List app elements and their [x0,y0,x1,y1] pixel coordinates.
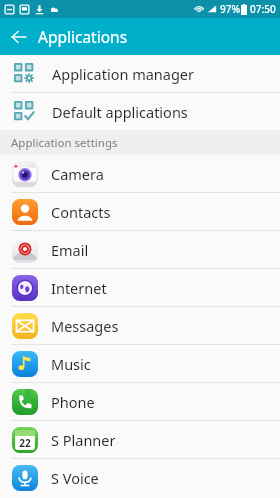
staticText: Application settings [11,135,118,151]
staticText: Contacts [51,202,111,222]
button[interactable]: S Voice [0,459,280,496]
staticText: 97% [220,2,240,16]
staticText: Internet [51,278,107,298]
button[interactable]: Default applications [0,93,280,130]
button[interactable]: Navigate up [5,23,33,51]
staticText: 07:50 [250,2,276,16]
staticText: S Voice [51,468,99,488]
staticText: S Planner [51,430,116,450]
staticText: Camera [51,164,104,184]
staticText: Email [51,240,89,260]
staticText: Application manager [52,64,195,84]
button[interactable]: Contacts [0,193,280,230]
button[interactable]: Phone [0,383,280,420]
staticText: Default applications [52,102,188,122]
button[interactable]: Music [0,345,280,382]
button[interactable]: 22 [0,421,280,458]
staticText: 22 [19,436,31,450]
staticText: Messages [51,316,119,336]
button[interactable]: Internet [0,269,280,306]
staticText: Music [51,354,91,374]
button[interactable]: Camera [0,155,280,192]
button[interactable]: Email [0,231,280,268]
button[interactable]: Messages [0,307,280,344]
button[interactable]: Application manager [0,55,280,92]
staticText: Phone [51,392,95,412]
staticText: Applications [38,26,128,47]
